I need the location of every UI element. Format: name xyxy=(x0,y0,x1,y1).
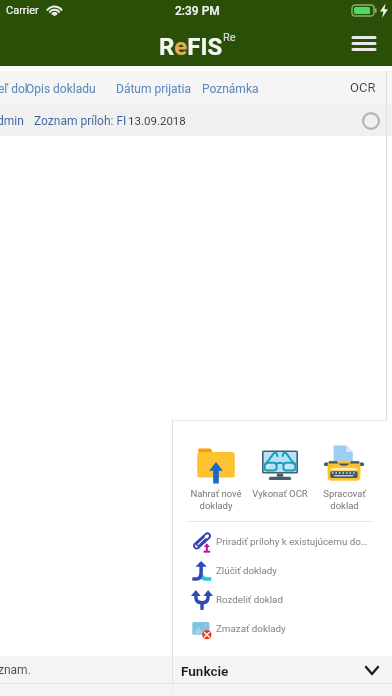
staticText: dmin xyxy=(0,114,24,128)
button[interactable]: Vykonať OCR xyxy=(248,444,312,499)
button[interactable]: Priradiť prílohy k existujúcemu do… xyxy=(172,527,387,556)
staticText: Spracovať doklad xyxy=(323,488,366,511)
staticText: Zlúčiť doklady xyxy=(216,565,277,576)
staticText: Zmazať doklady xyxy=(216,623,286,634)
staticText: Poznámka xyxy=(202,82,259,96)
button[interactable]: Nahrať nové doklady xyxy=(184,444,248,511)
staticText: Carrier xyxy=(6,4,39,17)
staticText: 2:39 PM xyxy=(175,4,220,18)
button[interactable]: Menu xyxy=(340,22,392,66)
staticText: Nahrať nové doklady xyxy=(190,488,242,511)
staticText: 13.09.2018 xyxy=(128,114,186,127)
button[interactable]: Rozdeliť doklad xyxy=(172,585,387,614)
staticText: Opis dokladu xyxy=(26,82,96,96)
staticText: Priradiť prílohy k existujúcemu do… xyxy=(216,536,368,547)
button[interactable]: dmin xyxy=(0,105,392,136)
staticText: Dátum prijatia xyxy=(116,82,191,96)
button[interactable]: Funkcie xyxy=(173,656,392,683)
staticText: Re xyxy=(223,31,236,44)
button[interactable]: znam. xyxy=(0,656,172,683)
staticText: Zoznam príloh: FI xyxy=(34,114,127,128)
button[interactable]: Zlúčiť doklady xyxy=(172,556,387,585)
button[interactable]: Spracovať doklad xyxy=(312,444,376,511)
staticText: Vykonať OCR xyxy=(252,488,308,499)
staticText: Rozdeliť doklad xyxy=(216,594,283,605)
staticText: ReFIS xyxy=(159,33,223,61)
other: Select row xyxy=(362,112,380,130)
staticText: eľ dol xyxy=(0,82,28,96)
staticText: OCR xyxy=(350,80,376,95)
staticText: znam. xyxy=(0,663,31,677)
other: Expand xyxy=(366,667,378,674)
staticText: Funkcie xyxy=(181,663,229,679)
button[interactable]: Zmazať doklady xyxy=(172,614,387,643)
